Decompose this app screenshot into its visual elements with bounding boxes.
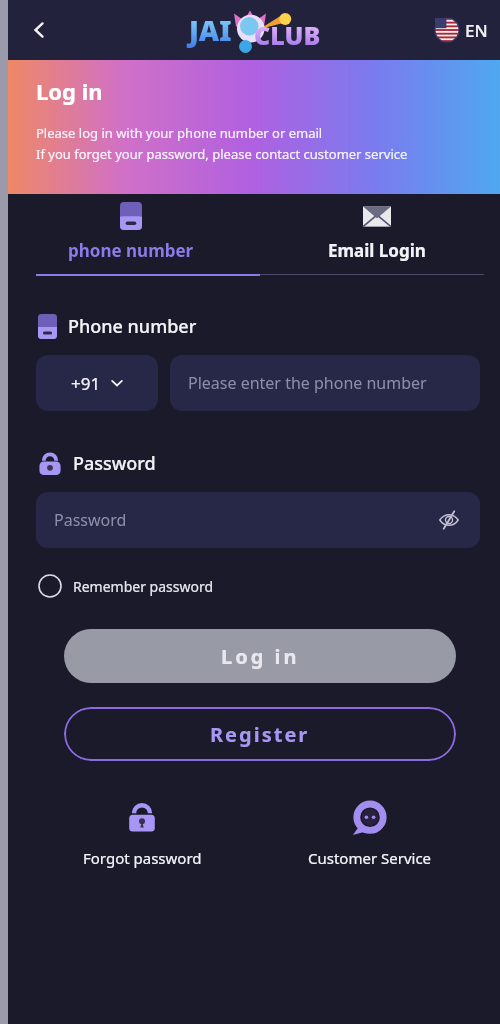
- staticText: phone number: [68, 239, 194, 262]
- staticText: Log in: [36, 76, 103, 106]
- button[interactable]: EN: [435, 18, 488, 42]
- staticText: JAI: [189, 11, 232, 49]
- staticText: Email Login: [328, 239, 426, 262]
- button[interactable]: Log in: [64, 629, 456, 683]
- button[interactable]: Forgot password: [28, 798, 256, 868]
- staticText: CLUB: [254, 18, 321, 52]
- staticText: Register: [210, 721, 310, 748]
- button[interactable]: +91: [36, 355, 158, 411]
- staticText: Remember password: [73, 577, 214, 596]
- staticText: Customer Service: [308, 848, 432, 868]
- staticText: EN: [465, 19, 488, 42]
- staticText: +91: [71, 372, 101, 395]
- button[interactable]: Remember password: [38, 574, 214, 598]
- button[interactable]: Password: [36, 492, 480, 548]
- staticText: Password: [54, 509, 436, 531]
- staticText: Password: [73, 451, 156, 476]
- button[interactable]: Email Login: [254, 202, 500, 262]
- staticText: Please enter the phone number: [188, 372, 427, 394]
- staticText: If you forget your password, please cont…: [36, 145, 408, 163]
- button[interactable]: Register: [64, 707, 456, 761]
- button[interactable]: Back: [22, 13, 56, 47]
- button[interactable]: Customer Service: [256, 798, 484, 868]
- staticText: Forgot password: [83, 848, 202, 868]
- button[interactable]: Please enter the phone number: [170, 355, 480, 411]
- staticText: Phone number: [68, 314, 197, 339]
- button[interactable]: Show password: [436, 507, 462, 533]
- staticText: Log in: [221, 643, 300, 670]
- button[interactable]: phone number: [8, 202, 254, 262]
- staticText: Please log in with your phone number or …: [36, 124, 323, 142]
